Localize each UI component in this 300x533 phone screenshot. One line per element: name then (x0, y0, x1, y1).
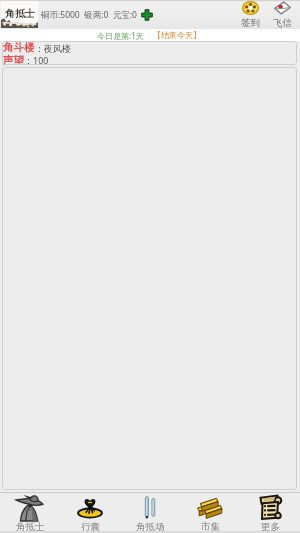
staticText: ：夜风楼 (35, 43, 71, 54)
button[interactable]: 更多 (240, 493, 300, 531)
staticText: 铜币:5000 银两:0 元宝:0 (41, 9, 137, 21)
staticText: 更多 (261, 521, 280, 531)
staticText: 角抵士 (16, 521, 45, 531)
button[interactable]: 飞信 (267, 0, 297, 29)
button[interactable]: 充值 (141, 9, 153, 21)
staticText: 今日是第:1天 (97, 30, 144, 41)
button[interactable]: 【结束今天】 (153, 30, 201, 40)
staticText: 签到 (241, 17, 260, 29)
staticText: 角斗楼 (3, 41, 35, 54)
staticText: 角抵场 (136, 521, 165, 531)
staticText: ：100 (24, 54, 49, 65)
staticText: 角抵士 (5, 7, 35, 20)
button[interactable]: 角抵场 (120, 493, 180, 531)
button[interactable]: 角抵士头像 (1, 1, 38, 28)
button[interactable]: 行囊 (60, 493, 120, 531)
staticText: 行囊 (81, 521, 100, 531)
button[interactable]: 角抵士 (0, 493, 60, 531)
staticText: 市集 (201, 521, 220, 531)
staticText: 飞信 (273, 17, 292, 29)
button[interactable]: 签到 (235, 0, 265, 29)
button[interactable]: 市集 (180, 493, 240, 531)
staticText: 声望 (3, 54, 24, 65)
